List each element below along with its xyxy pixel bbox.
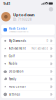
- staticText: Decoration: [9, 70, 24, 73]
- staticText: Complete tasks to get rewards: [9, 31, 29, 33]
- button[interactable]: Host Center: [1, 83, 55, 91]
- staticText: Noble: [9, 62, 18, 65]
- button[interactable]: Decoration: [1, 68, 55, 75]
- staticText: ID: 7193228: [13, 18, 32, 21]
- staticText: 9:41: [3, 1, 10, 6]
- button[interactable]: Settings: [1, 91, 55, 98]
- button[interactable]: Noble: [1, 60, 55, 68]
- staticText: Not activated: [31, 47, 48, 50]
- staticText: Settings: [9, 93, 20, 96]
- staticText: Achievement: [9, 47, 26, 50]
- button[interactable]: My Diamonds: [1, 37, 55, 45]
- button[interactable]: Family: [1, 75, 55, 83]
- button[interactable]: Uptodown: [0, 11, 56, 22]
- staticText: Host Center: [9, 85, 26, 88]
- button[interactable]: Settings: [49, 7, 53, 11]
- staticText: My Diamonds: [9, 39, 26, 43]
- staticText: Family: [9, 77, 16, 81]
- staticText: 0: [46, 39, 48, 43]
- button[interactable]: Achievement: [1, 45, 55, 52]
- staticText: Golf: [9, 54, 15, 58]
- staticText: Uptodown: [13, 12, 35, 17]
- button[interactable]: Flash Center: [1, 25, 55, 35]
- button[interactable]: Golf: [1, 52, 55, 60]
- staticText: Flash Center: [9, 27, 27, 30]
